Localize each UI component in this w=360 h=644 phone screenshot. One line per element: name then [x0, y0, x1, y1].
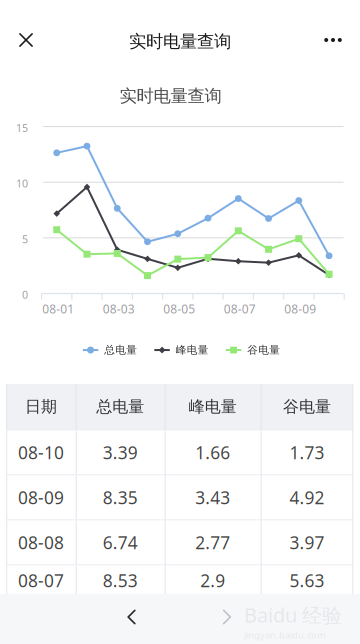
- staticText: 总电量: [104, 343, 137, 357]
- staticText: 谷电量: [283, 397, 331, 417]
- staticText: 2.9: [200, 569, 225, 592]
- staticText: 实时电量查询: [119, 85, 221, 107]
- staticText: 08-09: [284, 301, 316, 317]
- button[interactable]: Forward: [205, 595, 249, 639]
- button[interactable]: Back: [109, 595, 153, 639]
- staticText: 日期: [25, 397, 57, 417]
- staticText: 8.35: [103, 486, 138, 509]
- staticText: 08-07: [224, 301, 256, 317]
- staticText: 8.53: [103, 569, 138, 592]
- staticText: 15: [16, 121, 28, 135]
- staticText: 3.39: [103, 441, 138, 464]
- staticText: 2.77: [195, 531, 230, 554]
- staticText: 6.74: [103, 531, 138, 554]
- staticText: 实时电量查询: [129, 31, 231, 52]
- button[interactable]: 谷电量: [226, 343, 280, 357]
- button[interactable]: Close: [4, 18, 48, 62]
- staticText: 08-07: [18, 569, 64, 592]
- staticText: 10: [16, 176, 28, 190]
- staticText: 08-10: [18, 441, 64, 464]
- staticText: 1.66: [195, 441, 230, 464]
- staticText: 0: [22, 288, 28, 302]
- button[interactable]: 总电量: [83, 343, 137, 357]
- staticText: 5.63: [289, 569, 324, 592]
- staticText: 4.92: [289, 486, 324, 509]
- button[interactable]: 峰电量: [154, 343, 209, 357]
- staticText: 峰电量: [176, 343, 209, 357]
- staticText: 08-05: [163, 301, 195, 317]
- staticText: 5: [22, 232, 28, 246]
- staticText: 峰电量: [189, 397, 237, 417]
- staticText: 1.73: [289, 441, 324, 464]
- staticText: 08-09: [18, 486, 64, 509]
- button[interactable]: More options: [311, 18, 355, 62]
- staticText: 谷电量: [247, 343, 280, 357]
- staticText: 3.97: [289, 531, 324, 554]
- staticText: Baidu 经验: [244, 601, 342, 628]
- staticText: 总电量: [96, 397, 144, 417]
- staticText: jingyan.baidu.com: [244, 629, 326, 641]
- staticText: 08-01: [42, 301, 74, 317]
- staticText: 08-03: [103, 301, 135, 317]
- staticText: 08-08: [18, 531, 64, 554]
- staticText: 3.43: [195, 486, 230, 509]
